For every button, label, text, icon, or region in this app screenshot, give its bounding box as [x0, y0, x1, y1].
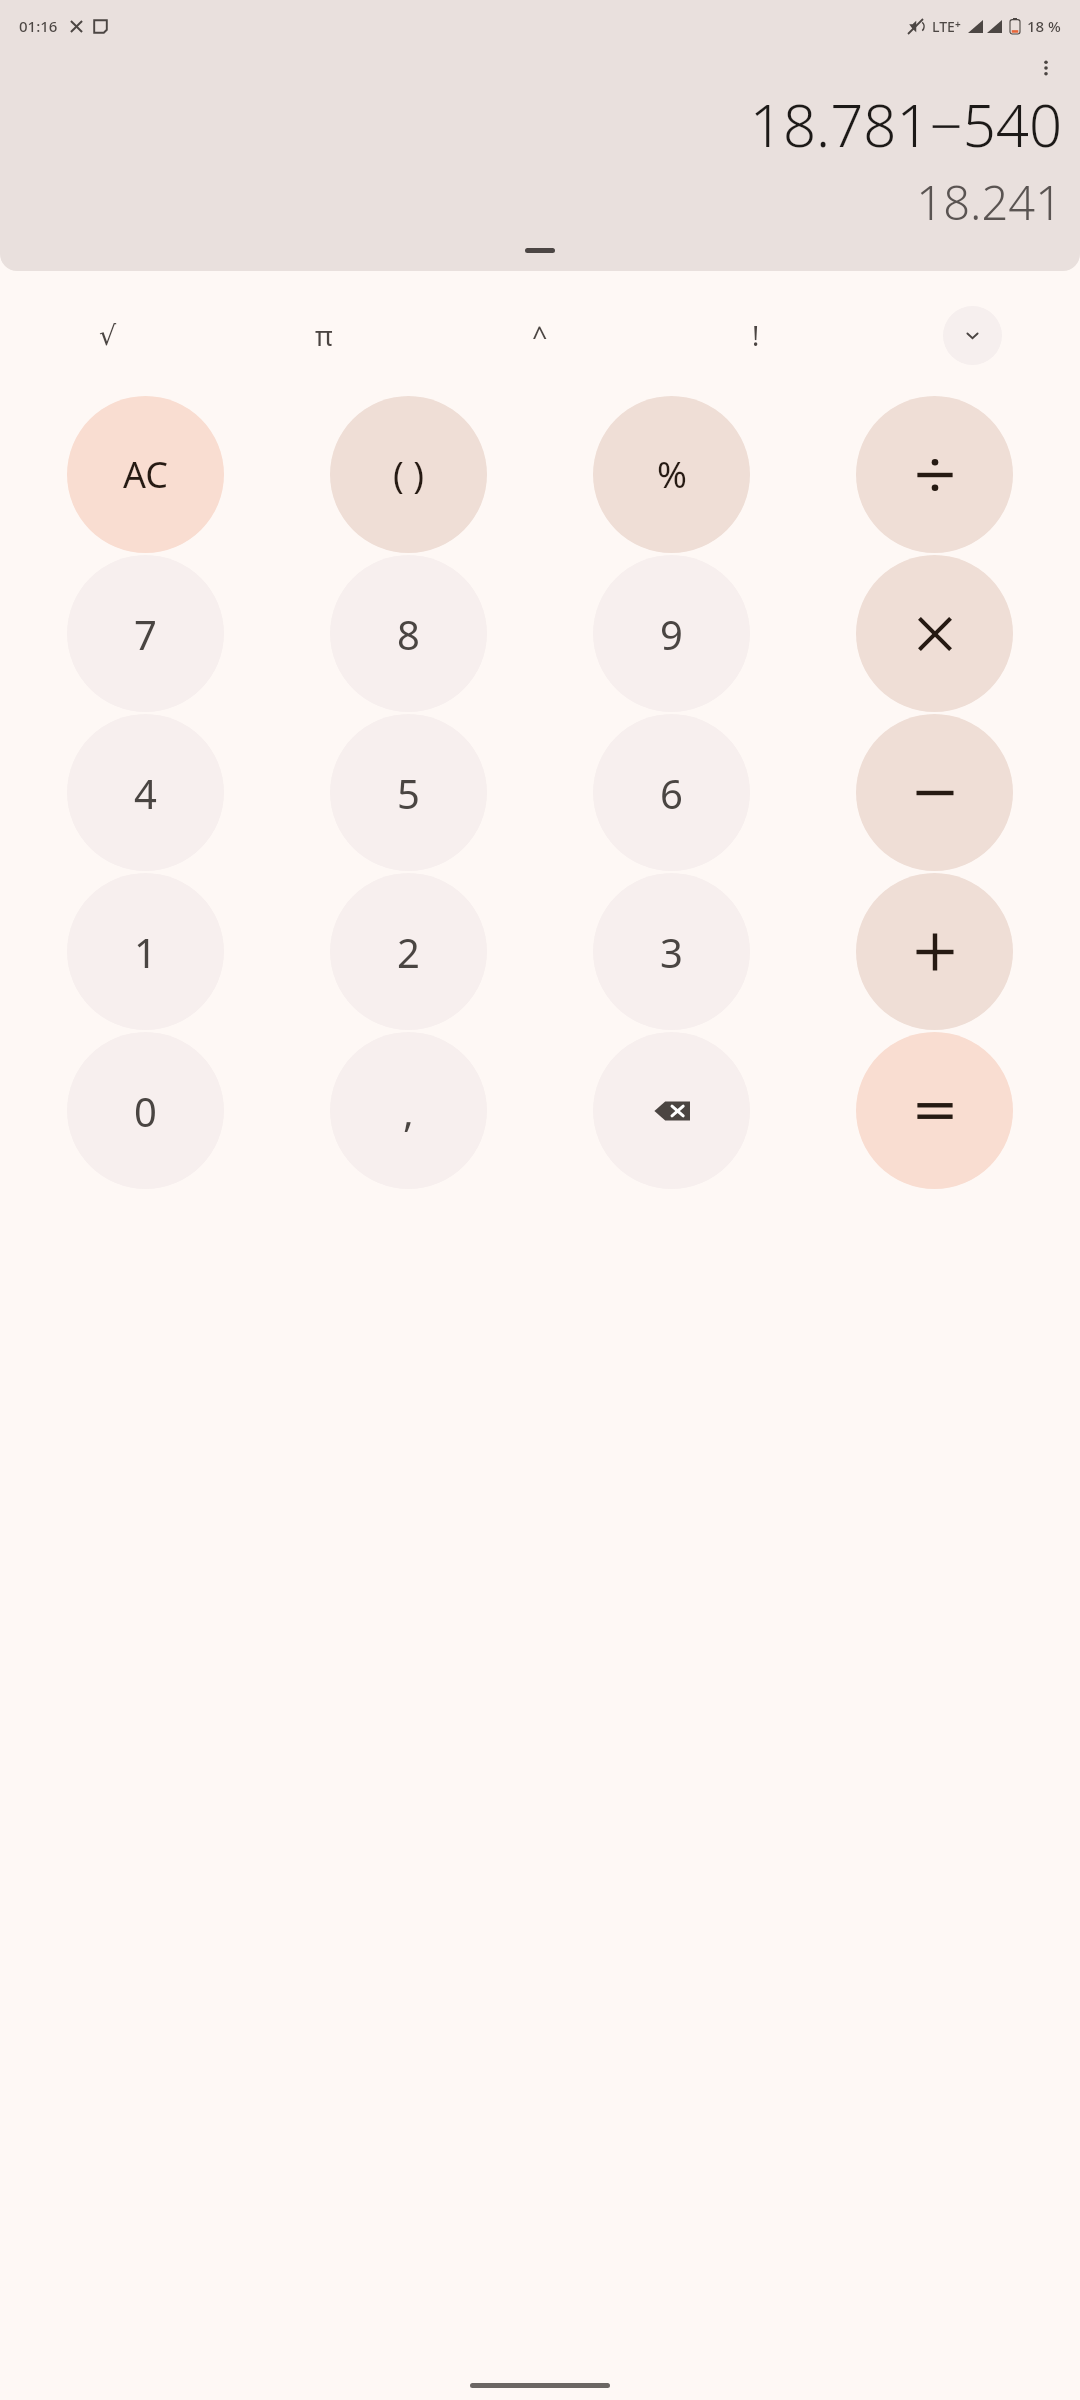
button[interactable]: AC: [67, 396, 224, 553]
staticText: ,: [403, 1084, 414, 1138]
button[interactable]: 1: [67, 873, 224, 1030]
button[interactable]: 7: [67, 555, 224, 712]
staticText: ( ): [393, 450, 424, 499]
button[interactable]: Add: [856, 873, 1013, 1030]
button[interactable]: !: [648, 305, 864, 365]
button[interactable]: Equals: [856, 1032, 1013, 1189]
button[interactable]: 6: [593, 714, 750, 871]
button[interactable]: ,: [330, 1032, 487, 1189]
button[interactable]: π: [216, 305, 432, 365]
staticText: 8: [397, 607, 420, 661]
staticText: √: [99, 320, 117, 351]
staticText: 2: [397, 925, 420, 979]
staticText: 3: [660, 925, 683, 979]
button[interactable]: √: [0, 305, 216, 365]
staticText: 1: [134, 925, 157, 979]
staticText: 01:16: [19, 16, 58, 36]
staticText: 7: [134, 607, 157, 661]
staticText: AC: [123, 450, 169, 499]
staticText: 5: [397, 766, 420, 820]
button[interactable]: ^: [432, 305, 648, 365]
button[interactable]: 0: [67, 1032, 224, 1189]
button[interactable]: Show more functions: [943, 306, 1002, 365]
staticText: ^: [532, 317, 548, 354]
button[interactable]: 4: [67, 714, 224, 871]
button[interactable]: 8: [330, 555, 487, 712]
button[interactable]: Divide: [856, 396, 1013, 553]
button[interactable]: 5: [330, 714, 487, 871]
staticText: 9: [660, 607, 683, 661]
staticText: 0: [134, 1084, 157, 1138]
button[interactable]: Subtract: [856, 714, 1013, 871]
staticText: 18.781−540: [18, 85, 1062, 164]
button[interactable]: ( ): [330, 396, 487, 553]
staticText: LTE: [932, 17, 955, 36]
staticText: 18 %: [1027, 16, 1061, 36]
button[interactable]: 2: [330, 873, 487, 1030]
staticText: 4: [134, 766, 157, 820]
staticText: 6: [660, 766, 683, 820]
button[interactable]: More options: [1022, 44, 1070, 92]
button[interactable]: Multiply: [856, 555, 1013, 712]
staticText: π: [315, 317, 333, 354]
button[interactable]: 3: [593, 873, 750, 1030]
staticText: 18.241: [18, 170, 1062, 234]
staticText: +: [955, 17, 961, 31]
button[interactable]: Backspace: [593, 1032, 750, 1189]
button[interactable]: 9: [593, 555, 750, 712]
staticText: %: [657, 450, 687, 499]
button[interactable]: %: [593, 396, 750, 553]
staticText: !: [752, 317, 760, 354]
